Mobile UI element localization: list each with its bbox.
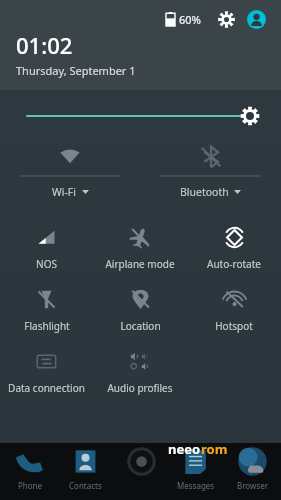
- staticText: Data connection: [8, 381, 85, 395]
- staticText: NOS: [36, 257, 57, 271]
- button[interactable]: Settings: [215, 8, 237, 30]
- button[interactable]: Apps: [115, 443, 167, 480]
- staticText: Phone: [18, 480, 43, 491]
- staticText: Contacts: [69, 480, 102, 491]
- staticText: neeo: [168, 440, 201, 458]
- staticText: Thursday, September 1: [16, 63, 136, 78]
- button[interactable]: Auto-rotate: [187, 218, 281, 280]
- button[interactable]: Contacts: [59, 443, 111, 491]
- staticText: 60%: [179, 12, 201, 27]
- button[interactable]: Bluetooth: [140, 140, 281, 212]
- button[interactable]: Browser: [226, 443, 278, 491]
- button[interactable]: Hotspot: [187, 280, 281, 342]
- staticText: Bluetooth: [180, 185, 229, 199]
- staticText: rom: [201, 440, 228, 458]
- staticText: Messages: [177, 480, 215, 491]
- button[interactable]: Airplane mode: [93, 218, 187, 280]
- button[interactable]: Phone: [4, 443, 56, 491]
- button[interactable]: NOS: [0, 218, 93, 280]
- staticText: Location: [120, 319, 161, 333]
- button[interactable]: Brightness: [0, 90, 281, 140]
- staticText: Audio profiles: [107, 381, 173, 395]
- staticText: Flashlight: [24, 319, 70, 333]
- staticText: Hotspot: [215, 319, 253, 333]
- button[interactable]: User profile: [245, 8, 267, 30]
- button[interactable]: Messages: [170, 443, 222, 491]
- button[interactable]: Wi-Fi: [0, 140, 140, 212]
- button[interactable]: Flashlight: [0, 280, 93, 342]
- staticText: Airplane mode: [105, 257, 175, 271]
- staticText: Browser: [237, 480, 268, 491]
- button[interactable]: Audio profiles: [93, 342, 187, 402]
- staticText: Auto-rotate: [207, 257, 261, 271]
- button[interactable]: Location: [93, 280, 187, 342]
- button[interactable]: Data connection: [0, 342, 93, 402]
- staticText: 01:02: [16, 30, 73, 60]
- staticText: Wi-Fi: [52, 185, 77, 199]
